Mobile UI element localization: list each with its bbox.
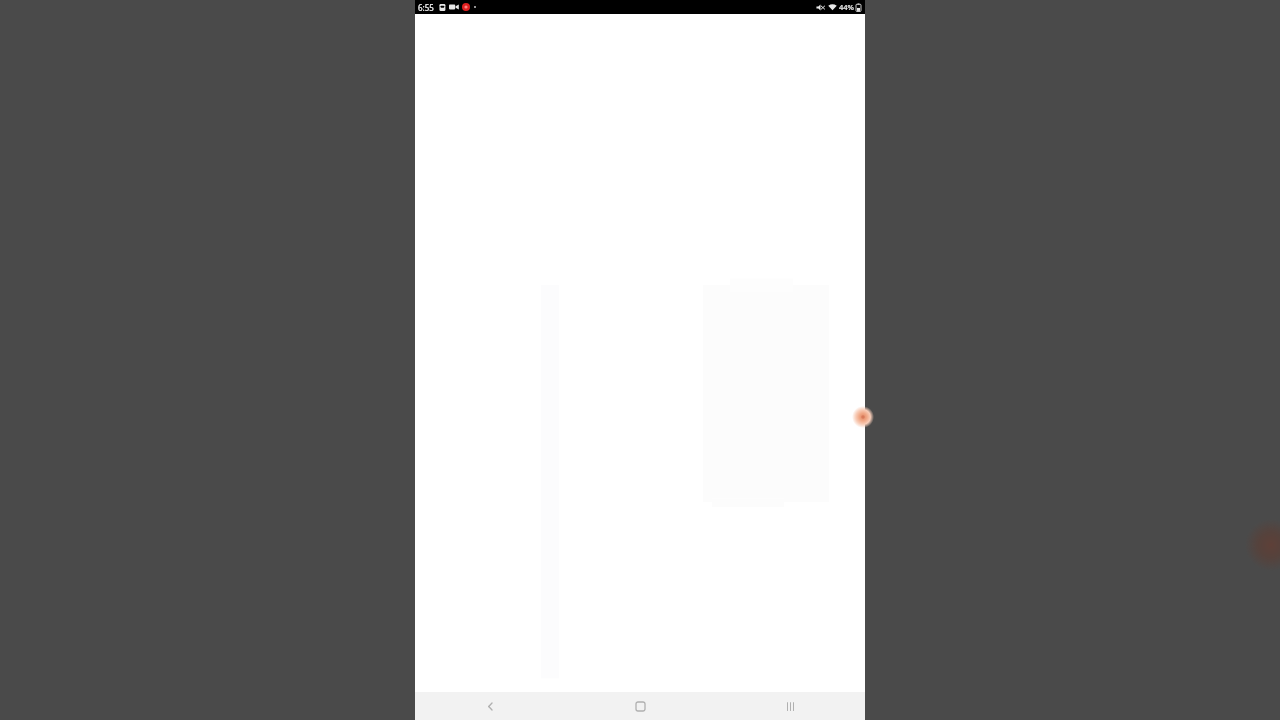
button[interactable]: Home bbox=[565, 692, 715, 720]
staticText: 6:55 bbox=[418, 2, 434, 13]
button[interactable]: Action bbox=[852, 406, 874, 428]
button[interactable]: Recent apps bbox=[715, 692, 865, 720]
staticText: 44% bbox=[839, 2, 854, 12]
button[interactable]: Back bbox=[415, 692, 565, 720]
